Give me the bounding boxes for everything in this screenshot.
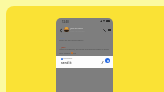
staticText: Jane bbox=[61, 46, 66, 49]
staticText: Jane Bradley bbox=[70, 27, 83, 30]
staticText: send it bbox=[61, 61, 72, 65]
button[interactable]: Send bbox=[105, 58, 110, 63]
button[interactable]: Attach file bbox=[100, 60, 104, 64]
staticText: Today bbox=[59, 37, 65, 40]
staticText: 12:30 bbox=[62, 20, 69, 24]
button[interactable]: Call bbox=[101, 27, 107, 33]
staticText: What are we doing today? bbox=[59, 39, 84, 42]
staticText: Messages bbox=[63, 57, 73, 60]
staticText: I was Wondering, we could the domino pai… bbox=[59, 48, 109, 51]
button[interactable]: More options bbox=[106, 27, 112, 33]
staticText: That sounds good bbox=[59, 52, 76, 55]
button[interactable]: Back bbox=[57, 27, 64, 34]
